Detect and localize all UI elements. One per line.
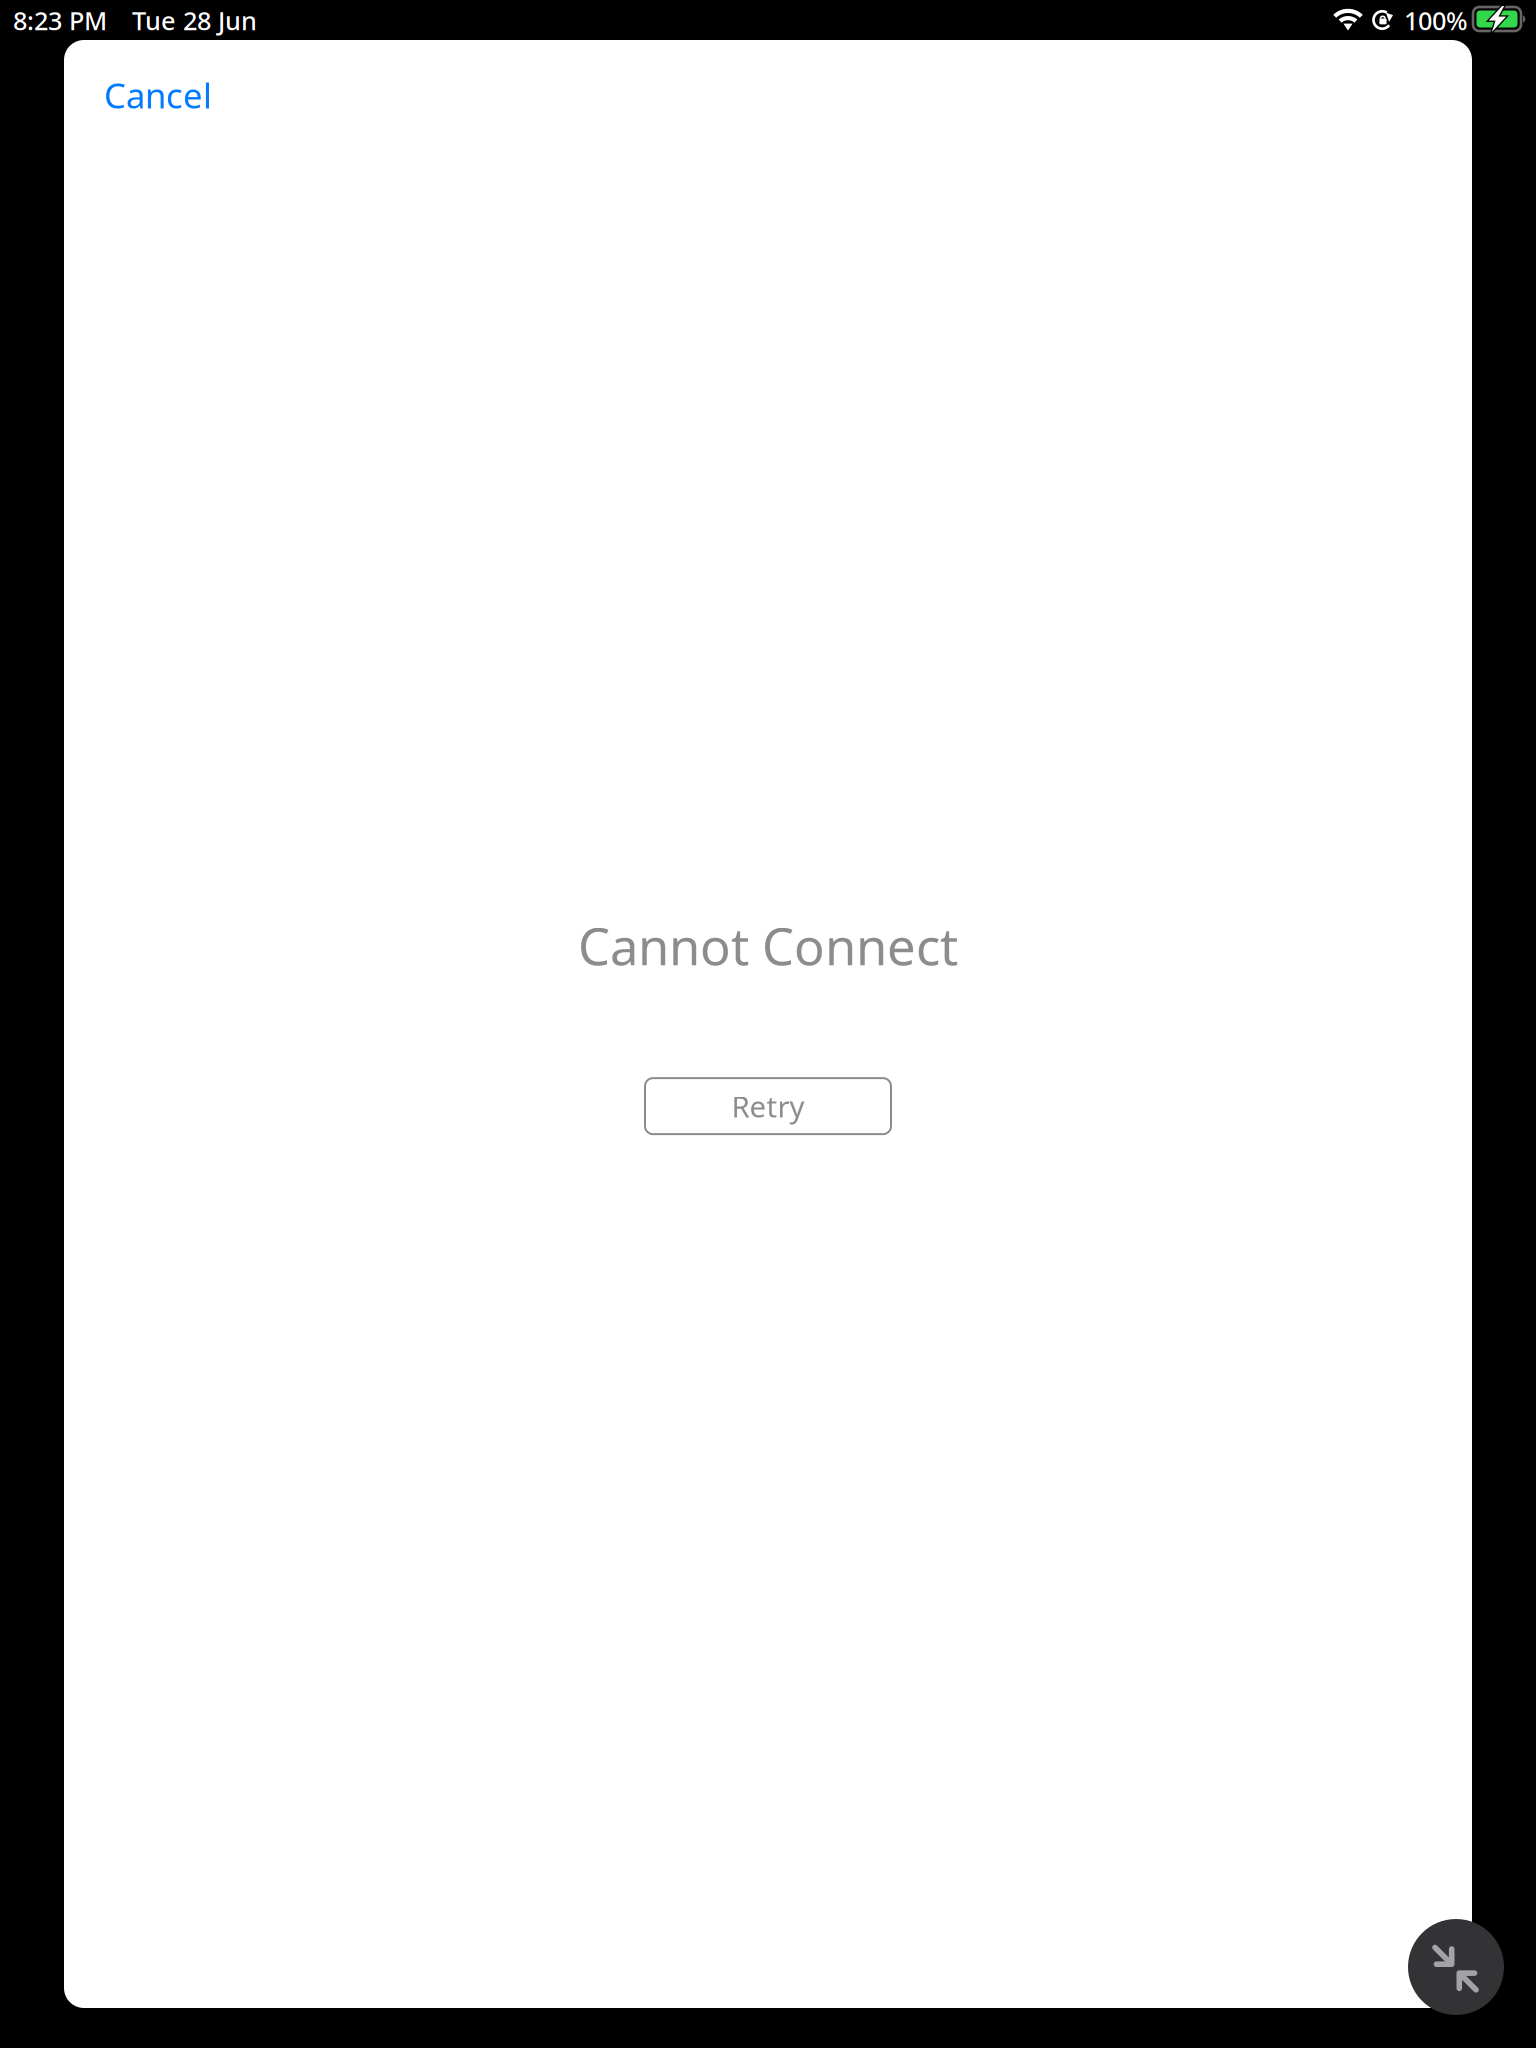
staticText: 8:23 PM xyxy=(13,3,107,37)
button[interactable]: Cancel xyxy=(104,65,254,125)
staticText: Retry xyxy=(731,1087,804,1126)
staticText: 100% xyxy=(1404,3,1468,37)
button[interactable]: Minimise xyxy=(1408,1919,1504,2015)
button[interactable]: Retry xyxy=(645,1078,891,1134)
staticText: Tue 28 Jun xyxy=(132,3,257,37)
staticText: Cannot Connect xyxy=(578,912,958,979)
staticText: Cancel xyxy=(104,72,212,118)
